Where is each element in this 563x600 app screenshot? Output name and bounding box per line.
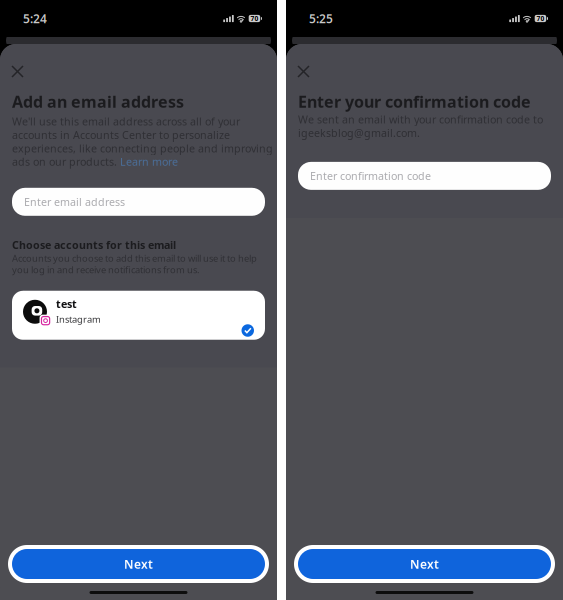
staticText: you log in and receive notifications fro… bbox=[12, 263, 200, 276]
staticText: Enter confirmation code bbox=[310, 169, 431, 183]
staticText: We sent an email with your confirmation … bbox=[298, 112, 543, 126]
staticText: experiences, like connecting people and … bbox=[12, 141, 273, 155]
staticText: Next bbox=[124, 556, 153, 572]
staticText: Learn more bbox=[120, 155, 178, 169]
button[interactable]: Close bbox=[7, 61, 28, 82]
staticText: 5:24 bbox=[23, 10, 47, 26]
staticText: Enter your confirmation code bbox=[298, 91, 531, 112]
button[interactable]: Close bbox=[293, 61, 314, 82]
staticText: 5:25 bbox=[309, 10, 333, 26]
staticText: Next bbox=[410, 556, 439, 572]
staticText: Add an email address bbox=[12, 91, 184, 112]
staticText: accounts in Accounts Center to personali… bbox=[12, 128, 230, 142]
staticText: We'll use this email address across all … bbox=[12, 114, 240, 128]
staticText: test bbox=[56, 297, 77, 311]
staticText: Instagram bbox=[56, 313, 101, 325]
staticText: igeeksblog@gmail.com. bbox=[298, 126, 420, 140]
button[interactable]: test bbox=[12, 291, 265, 340]
staticText: ads on our products. bbox=[12, 155, 117, 169]
staticText: 70 bbox=[536, 14, 544, 23]
button[interactable]: Next bbox=[12, 549, 265, 579]
staticText: Choose accounts for this email bbox=[12, 238, 176, 252]
button[interactable]: Next bbox=[298, 549, 551, 579]
staticText: Accounts you choose to add this email to… bbox=[12, 252, 257, 264]
staticText: Enter email address bbox=[24, 195, 125, 209]
staticText: 70 bbox=[250, 14, 258, 23]
